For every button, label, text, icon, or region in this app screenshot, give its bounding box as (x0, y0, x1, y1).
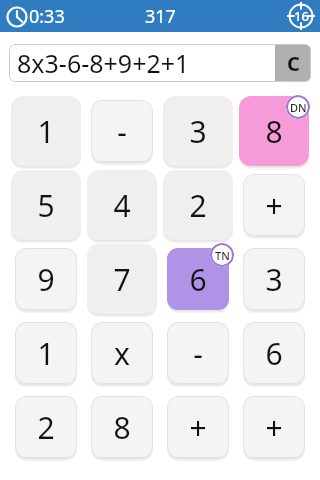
button[interactable]: 9 (15, 248, 77, 310)
staticText: 16 (294, 7, 309, 25)
button[interactable]: + (167, 396, 229, 458)
staticText: 7 (113, 259, 131, 300)
button[interactable]: 8 (239, 96, 309, 166)
staticText: DN (290, 100, 307, 115)
button[interactable]: 8 (91, 396, 153, 458)
button[interactable]: 6 (243, 322, 305, 384)
staticText: 1 (37, 111, 55, 152)
staticText: 317 (145, 4, 176, 29)
staticText: + (189, 407, 207, 448)
staticText: 0:33 (29, 4, 65, 29)
staticText: 9 (37, 259, 55, 300)
staticText: 3 (265, 259, 283, 300)
button[interactable]: + (243, 396, 305, 458)
staticText: 4 (113, 185, 131, 226)
button[interactable]: 1 (11, 96, 81, 166)
button[interactable]: Target score (288, 3, 314, 29)
staticText: x (114, 333, 130, 374)
button[interactable]: 3 (243, 248, 305, 310)
staticText: 8x3-6-8+9+2+1 (17, 46, 190, 80)
button[interactable]: C (275, 44, 311, 82)
staticText: 5 (37, 185, 55, 226)
staticText: C (287, 50, 300, 77)
button[interactable]: 7 (87, 244, 157, 314)
button[interactable]: Timer (6, 4, 65, 29)
button[interactable]: 2 (15, 396, 77, 458)
button[interactable]: 3 (163, 96, 233, 166)
button[interactable]: 5 (11, 170, 81, 240)
button[interactable]: 4 (87, 170, 157, 240)
staticText: - (117, 111, 127, 152)
button[interactable]: + (243, 174, 305, 236)
button[interactable]: 2 (163, 170, 233, 240)
button[interactable]: - (167, 322, 229, 384)
button[interactable]: - (91, 100, 153, 162)
staticText: 8 (113, 407, 131, 448)
staticText: 1 (37, 333, 55, 374)
button[interactable]: 6 (167, 248, 229, 310)
button[interactable]: 1 (15, 322, 77, 384)
staticText: + (265, 407, 283, 448)
staticText: - (193, 333, 203, 374)
staticText: 6 (265, 333, 283, 374)
staticText: + (265, 185, 283, 226)
staticText: 2 (189, 185, 207, 226)
staticText: 3 (189, 111, 207, 152)
staticText: 2 (37, 407, 55, 448)
staticText: 6 (189, 259, 207, 300)
button[interactable]: x (91, 322, 153, 384)
staticText: TN (215, 248, 230, 263)
staticText: 8 (265, 111, 283, 152)
